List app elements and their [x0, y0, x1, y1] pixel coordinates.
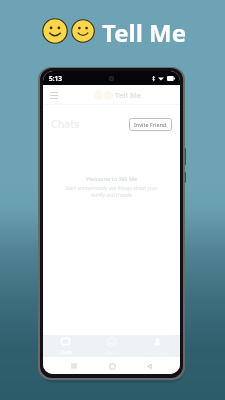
- staticText: Start anonymously ask things about your …: [65, 185, 158, 199]
- button[interactable]: Back: [142, 359, 156, 373]
- button[interactable]: Menu: [43, 87, 65, 104]
- staticText: Invite Friend: [134, 121, 167, 128]
- staticText: Welcome to Tell Me: [86, 175, 137, 182]
- button[interactable]: Home: [105, 359, 119, 373]
- button[interactable]: Chats: [43, 335, 88, 357]
- staticText: 5:13: [49, 74, 62, 83]
- staticText: Tell Me: [115, 90, 142, 100]
- staticText: Chats: [51, 117, 80, 131]
- button[interactable]: Invite Friend: [129, 118, 172, 131]
- staticText: Tell Me: [102, 16, 186, 49]
- staticText: Chats: [60, 349, 72, 355]
- button[interactable]: Recents: [67, 359, 81, 373]
